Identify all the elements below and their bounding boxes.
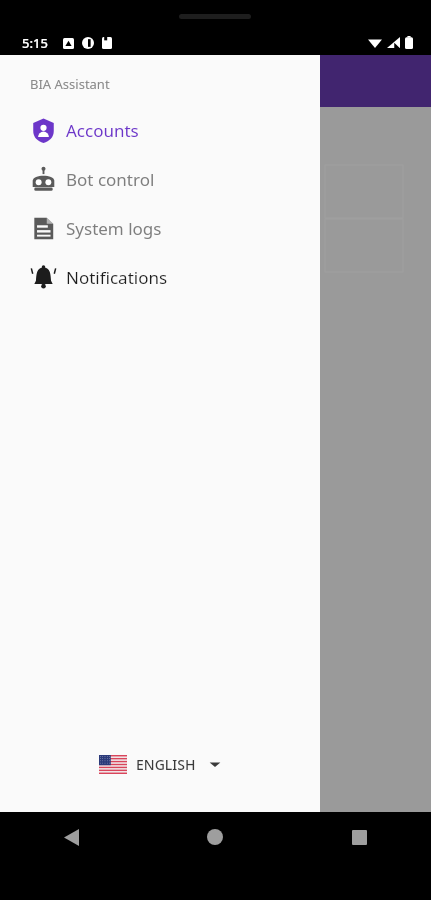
button[interactable]: Accounts: [0, 106, 320, 155]
button[interactable]: System logs: [0, 204, 320, 253]
staticText: Accounts: [66, 119, 139, 142]
button[interactable]: Home: [143, 812, 287, 862]
button[interactable]: Bot control: [0, 155, 320, 204]
staticText: Bot control: [66, 168, 155, 191]
staticText: 5:15: [22, 34, 48, 52]
staticText: BIA Assistant: [30, 75, 110, 93]
button[interactable]: ENGLISH: [0, 738, 320, 790]
button[interactable]: Notifications: [0, 253, 320, 302]
button[interactable]: Recents: [287, 812, 431, 862]
staticText: System logs: [66, 217, 162, 240]
staticText: Notifications: [66, 266, 168, 289]
staticText: ENGLISH: [136, 755, 196, 774]
button[interactable]: Back: [0, 812, 143, 862]
